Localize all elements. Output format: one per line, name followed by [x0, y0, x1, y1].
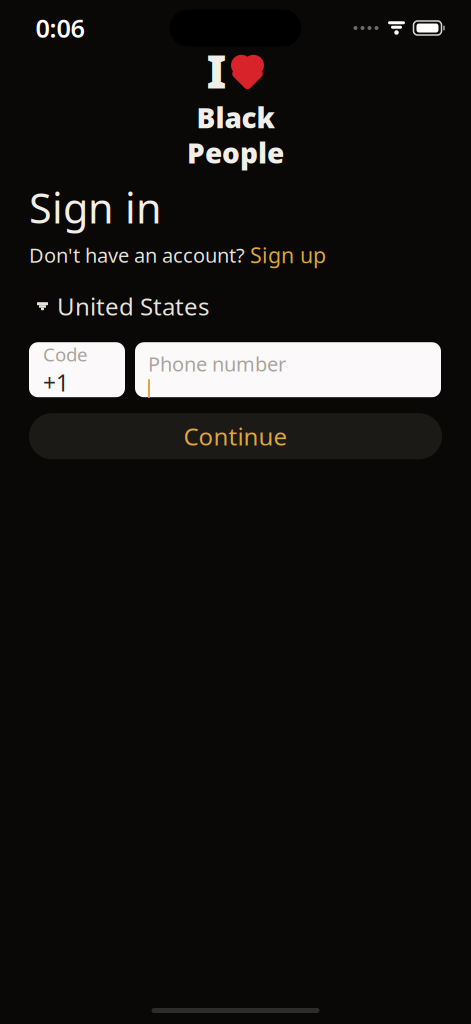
staticText: Continue — [183, 420, 287, 452]
staticText: Phone number — [148, 350, 286, 377]
staticText: Don't have an account? — [29, 242, 245, 268]
staticText: Black — [196, 99, 274, 136]
button[interactable]: Continue — [29, 413, 442, 459]
button[interactable]: United States — [29, 291, 442, 321]
staticText: People — [187, 134, 284, 171]
staticText: I — [206, 41, 226, 101]
button[interactable]: Sign up — [250, 241, 326, 269]
button[interactable]: Phone number — [135, 342, 441, 397]
staticText: 0:06 — [35, 11, 84, 45]
staticText: Sign up — [250, 241, 326, 269]
staticText: +1 — [43, 368, 69, 398]
staticText: Sign in — [29, 180, 162, 235]
staticText: Code — [43, 342, 88, 367]
staticText: United States — [57, 290, 209, 322]
button[interactable]: Code — [29, 342, 125, 397]
